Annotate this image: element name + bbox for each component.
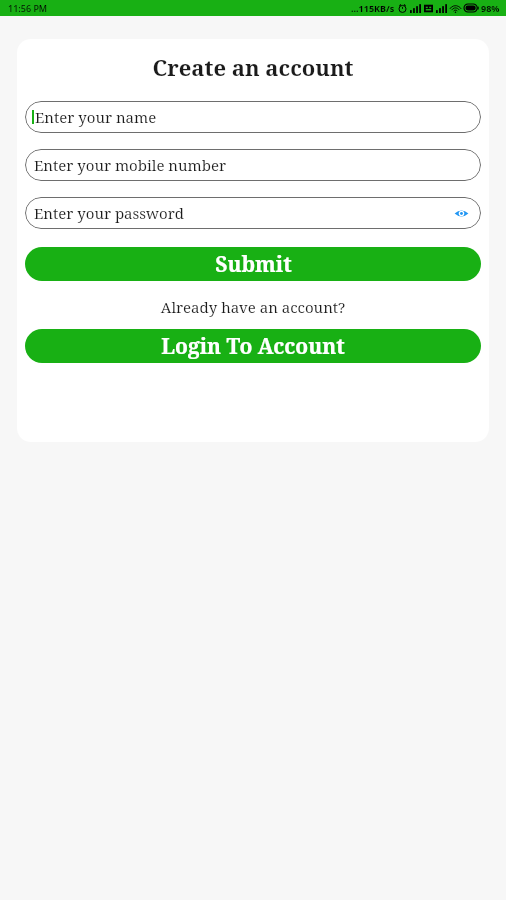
staticText: 98% <box>481 2 500 14</box>
staticText: 11:56 PM <box>8 2 48 14</box>
staticText: Create an account <box>25 52 481 82</box>
button[interactable]: Show password <box>452 204 470 222</box>
staticText: ...115KB/s <box>351 2 395 14</box>
staticText: Enter your mobile number <box>34 155 470 175</box>
staticText: Login To Account <box>161 332 345 361</box>
button[interactable]: Enter your password <box>25 197 481 229</box>
button[interactable]: Submit <box>25 247 481 281</box>
staticText: Enter your password <box>34 203 452 223</box>
button[interactable]: Enter your mobile number <box>25 149 481 181</box>
staticText: Enter your name <box>35 107 470 127</box>
staticText: Submit <box>215 250 292 279</box>
button[interactable]: Enter your name <box>25 101 481 133</box>
staticText: Already have an account? <box>25 297 481 317</box>
button[interactable]: Login To Account <box>25 329 481 363</box>
